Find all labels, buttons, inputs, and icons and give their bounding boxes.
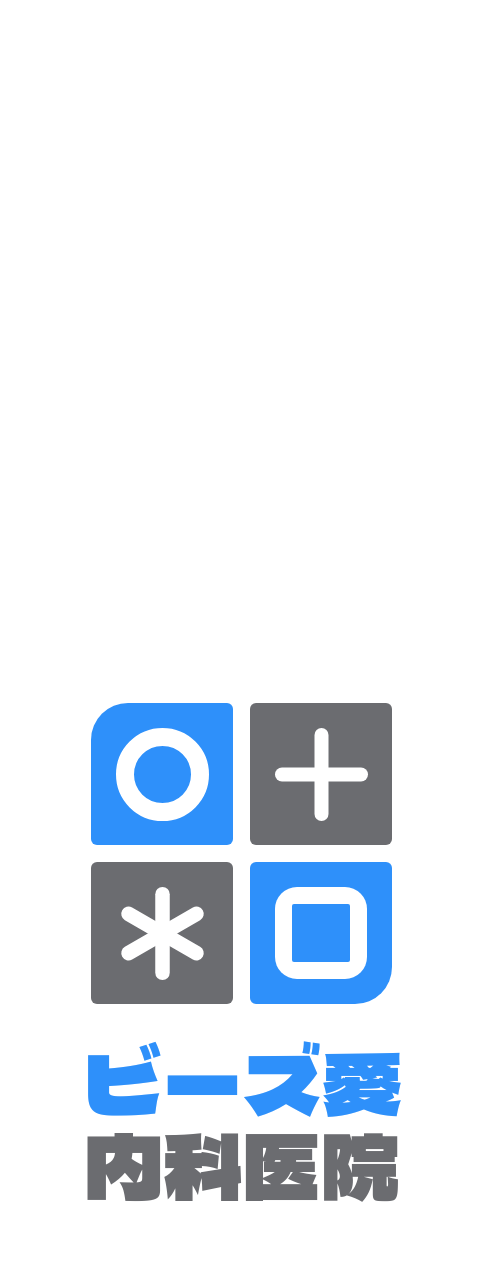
staticText: ビーズ愛 <box>82 1019 402 1140</box>
staticText: 内科医院 <box>84 1098 400 1226</box>
button[interactable]: ビーズ愛内科医院 ロゴ <box>91 703 392 1004</box>
